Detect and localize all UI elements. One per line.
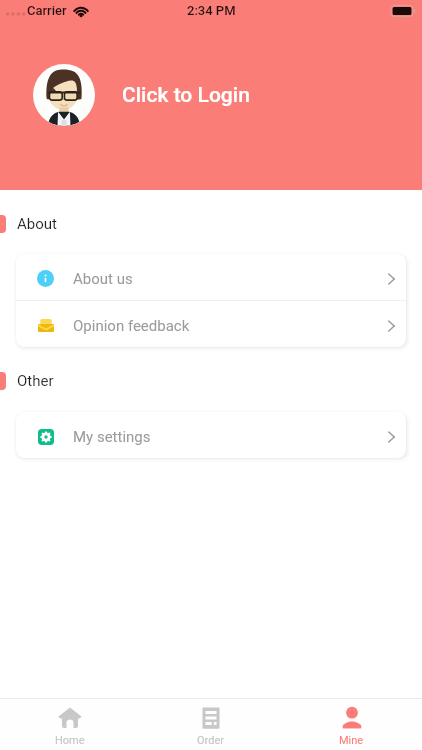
button[interactable]: Home bbox=[0, 699, 140, 747]
staticText: 2:34 PM bbox=[187, 3, 236, 18]
button[interactable]: My settings bbox=[16, 412, 406, 458]
staticText: Click to Login bbox=[122, 83, 250, 108]
button[interactable]: Order bbox=[140, 699, 281, 747]
button[interactable]: Opinion feedback bbox=[16, 301, 406, 347]
button[interactable]: About us bbox=[16, 254, 406, 300]
staticText: My settings bbox=[73, 428, 151, 446]
staticText: Home bbox=[55, 734, 85, 747]
staticText: About bbox=[17, 215, 57, 233]
staticText: Opinion feedback bbox=[73, 317, 190, 335]
button[interactable]: Mine bbox=[281, 699, 422, 747]
staticText: Mine bbox=[339, 734, 364, 747]
button[interactable]: Avatar, tap to login bbox=[33, 64, 95, 126]
staticText: About us bbox=[73, 270, 133, 288]
staticText: Carrier bbox=[27, 3, 67, 18]
staticText: Other bbox=[17, 372, 54, 390]
staticText: Order bbox=[197, 734, 224, 747]
